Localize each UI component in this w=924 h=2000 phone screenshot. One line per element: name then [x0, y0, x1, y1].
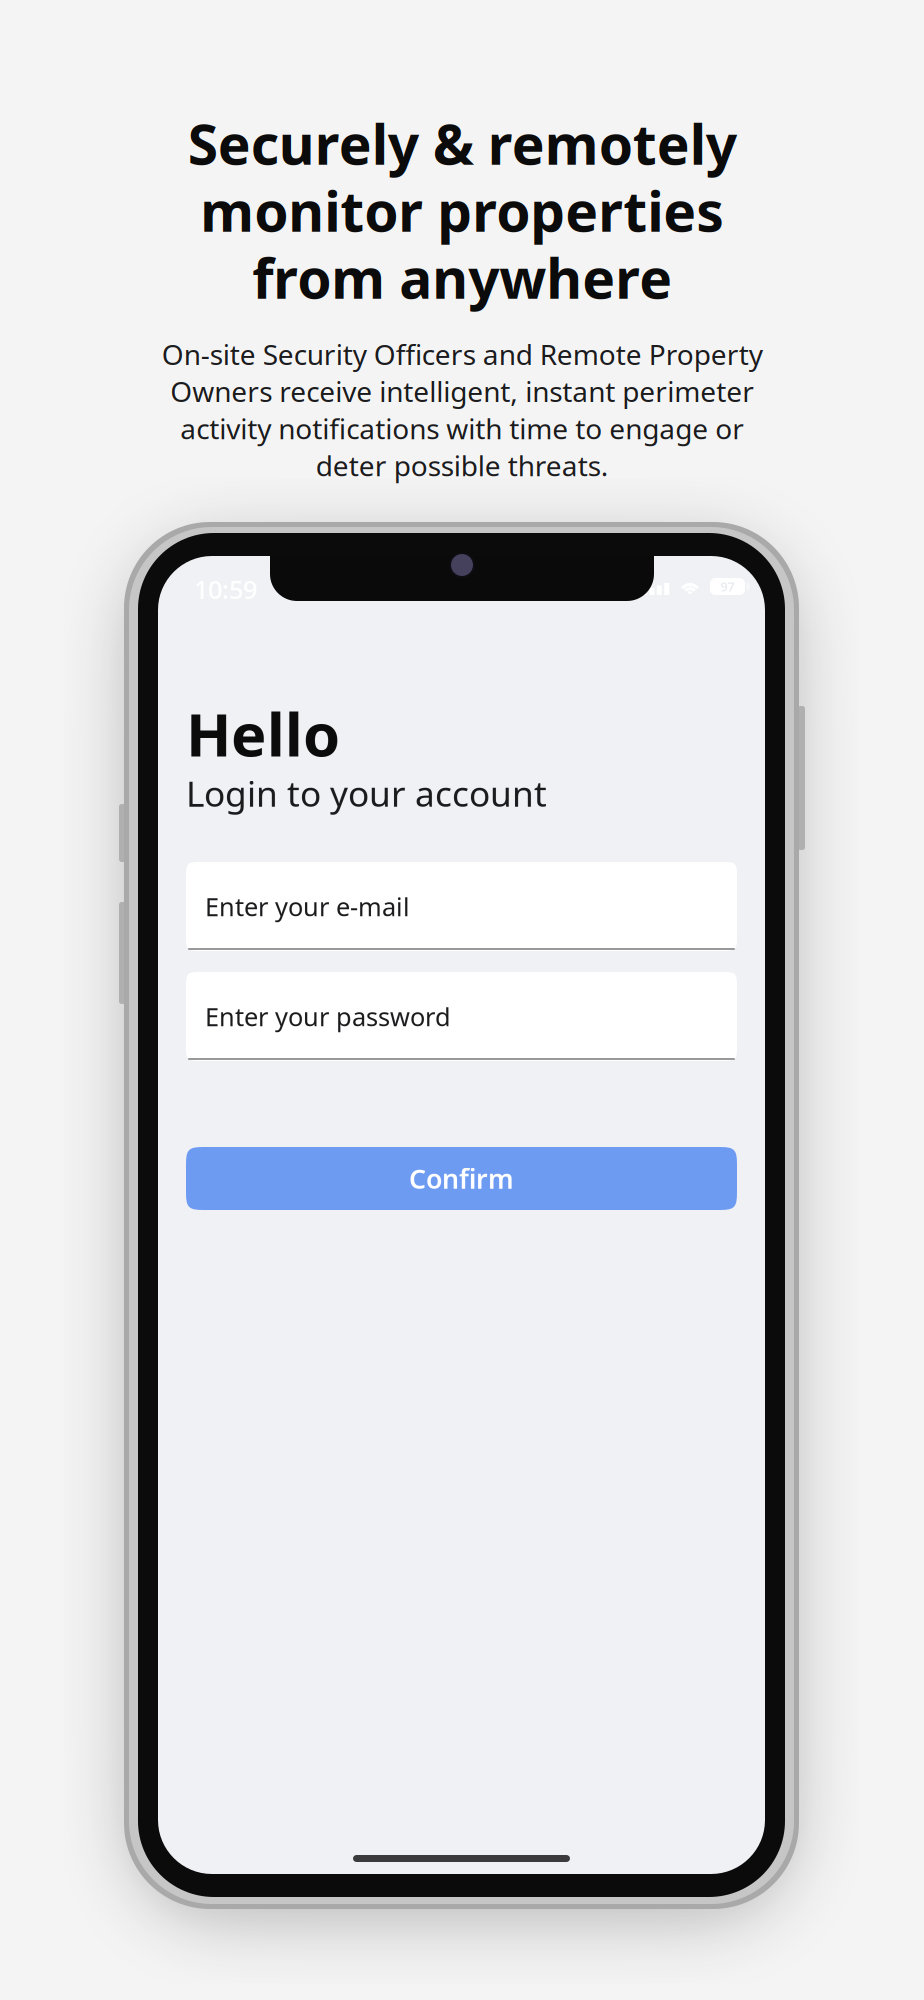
- staticText: Login to your account: [186, 769, 547, 817]
- button[interactable]: Enter your password: [186, 972, 737, 1061]
- staticText: Securely & remotely monitor properties f…: [187, 106, 736, 315]
- button[interactable]: Confirm: [186, 1147, 737, 1210]
- staticText: 10:59: [194, 572, 257, 606]
- button[interactable]: Enter your e-mail: [186, 862, 737, 951]
- staticText: Enter your e-mail: [205, 889, 410, 924]
- staticText: Confirm: [409, 1160, 514, 1197]
- staticText: Hello: [186, 693, 340, 774]
- staticText: On-site Security Officers and Remote Pro…: [161, 335, 762, 484]
- staticText: 97: [720, 578, 734, 595]
- staticText: Enter your password: [205, 999, 451, 1034]
